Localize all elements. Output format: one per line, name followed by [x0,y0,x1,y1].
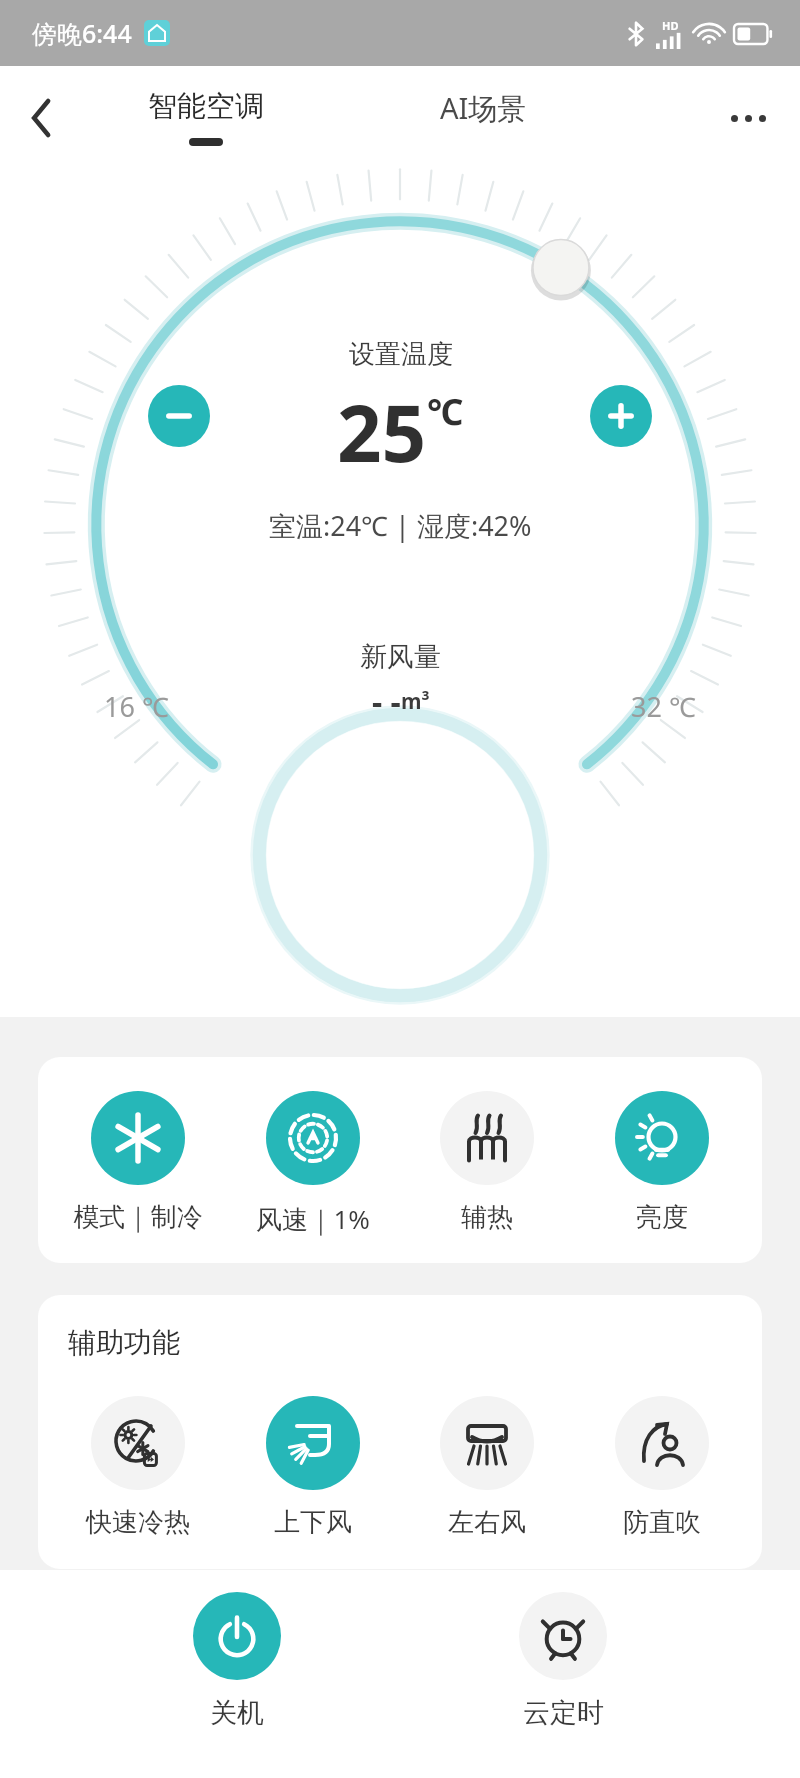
staticText: 风速｜1% [256,1201,370,1237]
staticText: 25 [337,379,427,485]
staticText: 左右风 [448,1506,526,1539]
button[interactable]: Back [14,90,70,146]
button[interactable]: 防直吹 [587,1396,737,1539]
button[interactable]: 风速｜1% [238,1091,388,1237]
staticText: AI场景 [440,88,527,128]
staticText: 设置温度 [349,338,453,371]
staticText: 智能空调 [148,88,264,125]
staticText: 上下风 [274,1506,352,1539]
staticText: 傍晚6:44 [32,16,132,50]
staticText: 快速冷热 [86,1506,190,1539]
staticText: 辅助功能 [68,1325,180,1360]
staticText: 32 ℃ [631,688,696,725]
button[interactable]: 亮度 [587,1091,737,1234]
button[interactable]: 辅热 [412,1091,562,1234]
staticText: 云定时 [523,1696,604,1730]
staticText: 16 ℃ [104,688,169,725]
button[interactable]: 关机 [147,1592,327,1730]
button[interactable]: Decrease temperature [148,385,210,447]
staticText: m³ [401,687,430,716]
button[interactable]: 上下风 [238,1396,388,1539]
staticText: 亮度 [636,1201,688,1234]
button[interactable]: 左右风 [412,1396,562,1539]
button[interactable]: 云定时 [473,1592,653,1730]
staticText: 室温:24℃ | 湿度:42% [269,507,532,544]
button[interactable]: More options [720,90,776,146]
staticText: ℃ [427,387,464,436]
button[interactable]: 模式｜制冷 [63,1091,213,1234]
staticText: - - [372,680,401,724]
staticText: 辅热 [461,1201,513,1234]
staticText: 防直吹 [623,1506,701,1539]
button[interactable]: 快速冷热 [63,1396,213,1539]
staticText: HD [662,18,679,33]
button[interactable]: 智能空调 [148,88,264,146]
button[interactable]: AI场景 [440,88,527,128]
staticText: 新风量 [360,640,441,674]
staticText: 关机 [210,1696,264,1730]
button[interactable]: Increase temperature [590,385,652,447]
staticText: 模式｜制冷 [73,1201,203,1234]
